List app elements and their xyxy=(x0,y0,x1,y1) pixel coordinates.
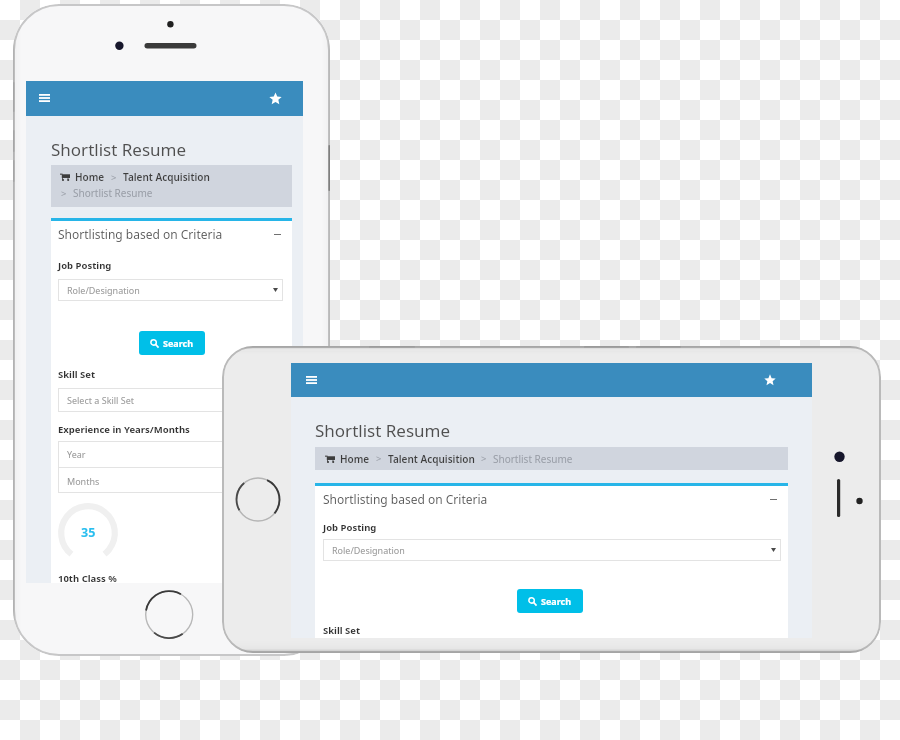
staticText: 10th Class % xyxy=(58,572,117,585)
button[interactable]: Select a Skill Set xyxy=(58,388,283,412)
staticText: Skill Set xyxy=(323,624,361,637)
staticText: Shortlist Resume xyxy=(51,138,187,161)
button[interactable]: Role/Designation xyxy=(58,279,283,301)
staticText: Job Posting xyxy=(58,259,112,272)
staticText: Talent Acquisition xyxy=(388,452,475,466)
staticText: Job Posting xyxy=(323,521,377,534)
staticText: Role/Designation xyxy=(67,284,140,296)
staticText: Select a Skill Set xyxy=(67,394,135,406)
staticText: Home xyxy=(75,170,105,184)
staticText: Experience in Years/Months xyxy=(58,423,190,436)
button[interactable]: Search xyxy=(139,331,205,355)
staticText: Shortlisting based on Criteria xyxy=(58,226,223,242)
staticText: Year xyxy=(67,448,86,460)
staticText: Shortlist Resume xyxy=(73,186,153,200)
button[interactable]: Favorite xyxy=(759,369,781,391)
staticText: 35 xyxy=(81,524,96,541)
staticText: > xyxy=(111,171,117,184)
button[interactable]: Collapse xyxy=(767,493,780,506)
button[interactable]: Menu xyxy=(33,87,55,109)
button[interactable]: Favorite xyxy=(264,87,286,109)
staticText: Search xyxy=(163,337,194,349)
staticText: Months xyxy=(67,475,100,487)
staticText: Shortlisting based on Criteria xyxy=(323,491,488,507)
button[interactable]: Search xyxy=(517,589,583,613)
staticText: > xyxy=(481,452,487,465)
staticText: Skill Set xyxy=(58,368,96,381)
staticText: Role/Designation xyxy=(332,544,405,556)
staticText: Shortlist Resume xyxy=(493,452,573,466)
staticText: Home xyxy=(340,452,370,466)
button[interactable]: Role/Designation xyxy=(323,539,781,561)
button[interactable]: Menu xyxy=(300,369,322,391)
staticText: Talent Acquisition xyxy=(123,170,210,184)
staticText: > xyxy=(376,452,382,465)
staticText: Shortlist Resume xyxy=(315,419,451,442)
button[interactable]: Collapse xyxy=(271,228,284,241)
staticText: Search xyxy=(541,595,572,607)
staticText: > xyxy=(61,187,67,200)
